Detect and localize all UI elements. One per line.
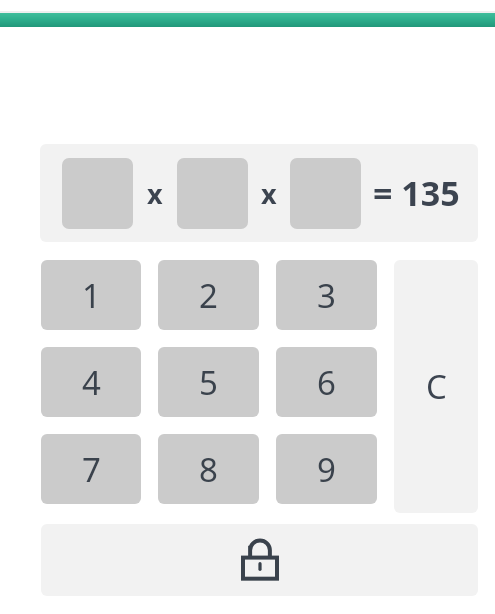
button[interactable]: Empty slot — [290, 158, 361, 229]
staticText: C — [426, 364, 447, 409]
staticText: x — [261, 175, 277, 212]
staticText: 6 — [317, 360, 336, 405]
staticText: 1 — [82, 273, 101, 318]
staticText: 5 — [199, 360, 218, 405]
staticText: = 135 — [373, 170, 460, 216]
staticText: 7 — [82, 447, 101, 492]
button[interactable]: 2 — [158, 260, 259, 330]
button[interactable]: 1 — [41, 260, 141, 330]
button[interactable]: 4 — [41, 347, 141, 417]
staticText: 8 — [199, 447, 218, 492]
button[interactable]: Empty slot — [177, 158, 248, 229]
staticText: 3 — [317, 273, 336, 318]
button[interactable]: 8 — [158, 434, 259, 504]
staticText: 4 — [82, 360, 101, 405]
button[interactable]: C — [394, 260, 478, 513]
staticText: x — [147, 175, 163, 212]
button[interactable]: 3 — [276, 260, 377, 330]
button[interactable]: 6 — [276, 347, 377, 417]
button[interactable]: 9 — [276, 434, 377, 504]
staticText: 9 — [317, 447, 336, 492]
button[interactable]: Empty slot — [62, 158, 133, 229]
button[interactable]: 7 — [41, 434, 141, 504]
button[interactable]: 5 — [158, 347, 259, 417]
staticText: 2 — [199, 273, 218, 318]
button[interactable]: Lock — [41, 524, 478, 596]
